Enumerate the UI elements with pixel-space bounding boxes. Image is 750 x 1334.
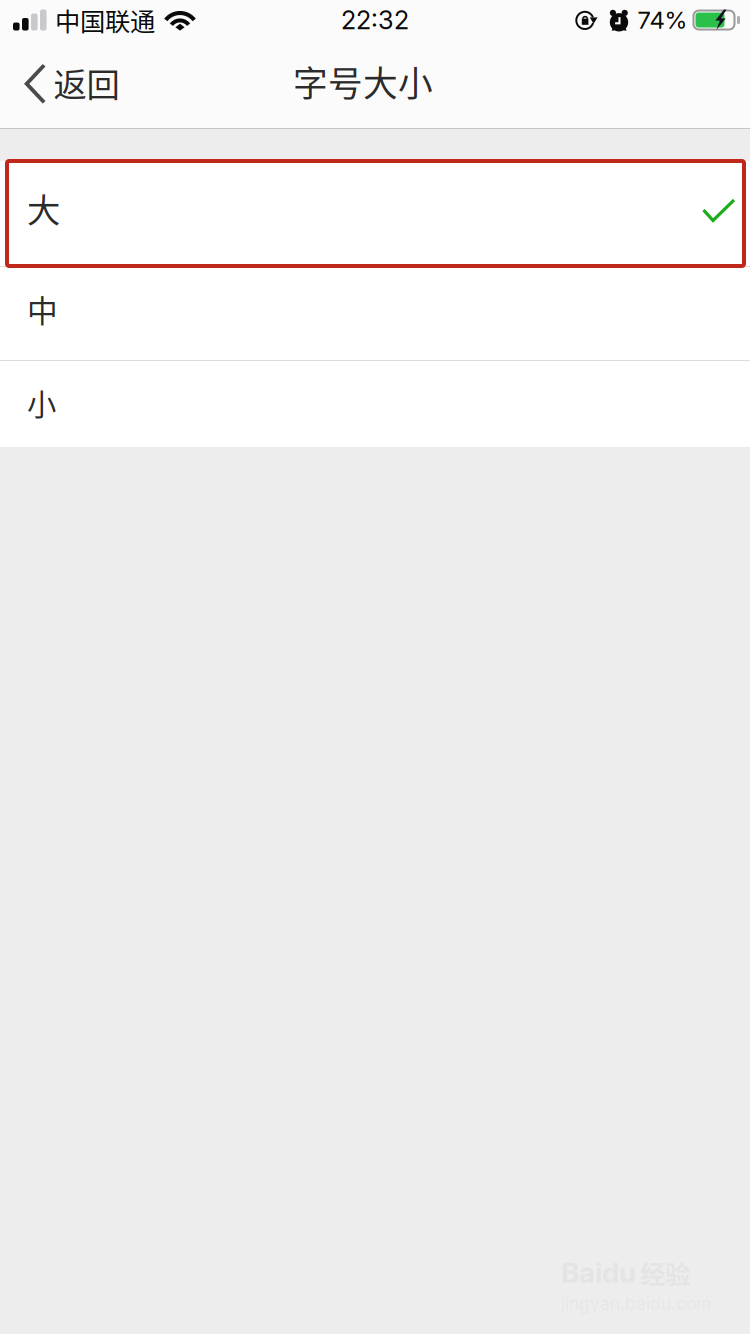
staticText: 字号大小 [293, 56, 433, 107]
staticText: 大 [27, 184, 60, 232]
button[interactable]: 小 [0, 361, 750, 447]
staticText: Baidu [561, 1256, 636, 1290]
button[interactable]: 中 [0, 267, 750, 360]
button[interactable]: 大 [0, 161, 750, 266]
staticText: 经验 [640, 1254, 690, 1291]
staticText: 74% [637, 5, 687, 34]
staticText: 中国联通 [55, 2, 155, 38]
staticText: 小 [27, 381, 56, 424]
staticText: 中 [27, 287, 58, 331]
button[interactable]: 返回 [0, 40, 133, 128]
staticText: 22:32 [341, 5, 409, 35]
staticText: 返回 [53, 58, 119, 107]
